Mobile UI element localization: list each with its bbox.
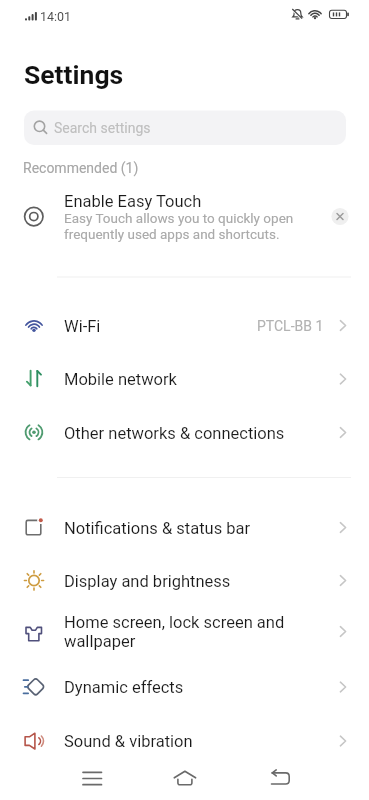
staticText: Search settings [54, 120, 151, 136]
staticText: Dynamic effects [64, 678, 184, 697]
staticText: Display and brightness [64, 572, 231, 591]
staticText: Wi-Fi [64, 317, 101, 336]
staticText: Notifications & status bar [64, 519, 251, 538]
staticText: 14:01 [40, 9, 72, 24]
staticText: PTCL-BB 1 [257, 318, 324, 334]
staticText: Sound & vibration [64, 732, 193, 751]
staticText: Enable Easy Touch [64, 192, 202, 211]
staticText: frequently used apps and shortcuts. [64, 226, 280, 242]
staticText: Home screen, lock screen and [64, 613, 285, 632]
staticText: Recommended (1) [23, 160, 139, 176]
staticText: Mobile network [64, 370, 177, 389]
staticText: Settings [24, 59, 124, 90]
staticText: Other networks & connections [64, 424, 285, 443]
staticText: wallpaper [64, 632, 136, 651]
staticText: Easy Touch allows you to quickly open [64, 210, 294, 226]
